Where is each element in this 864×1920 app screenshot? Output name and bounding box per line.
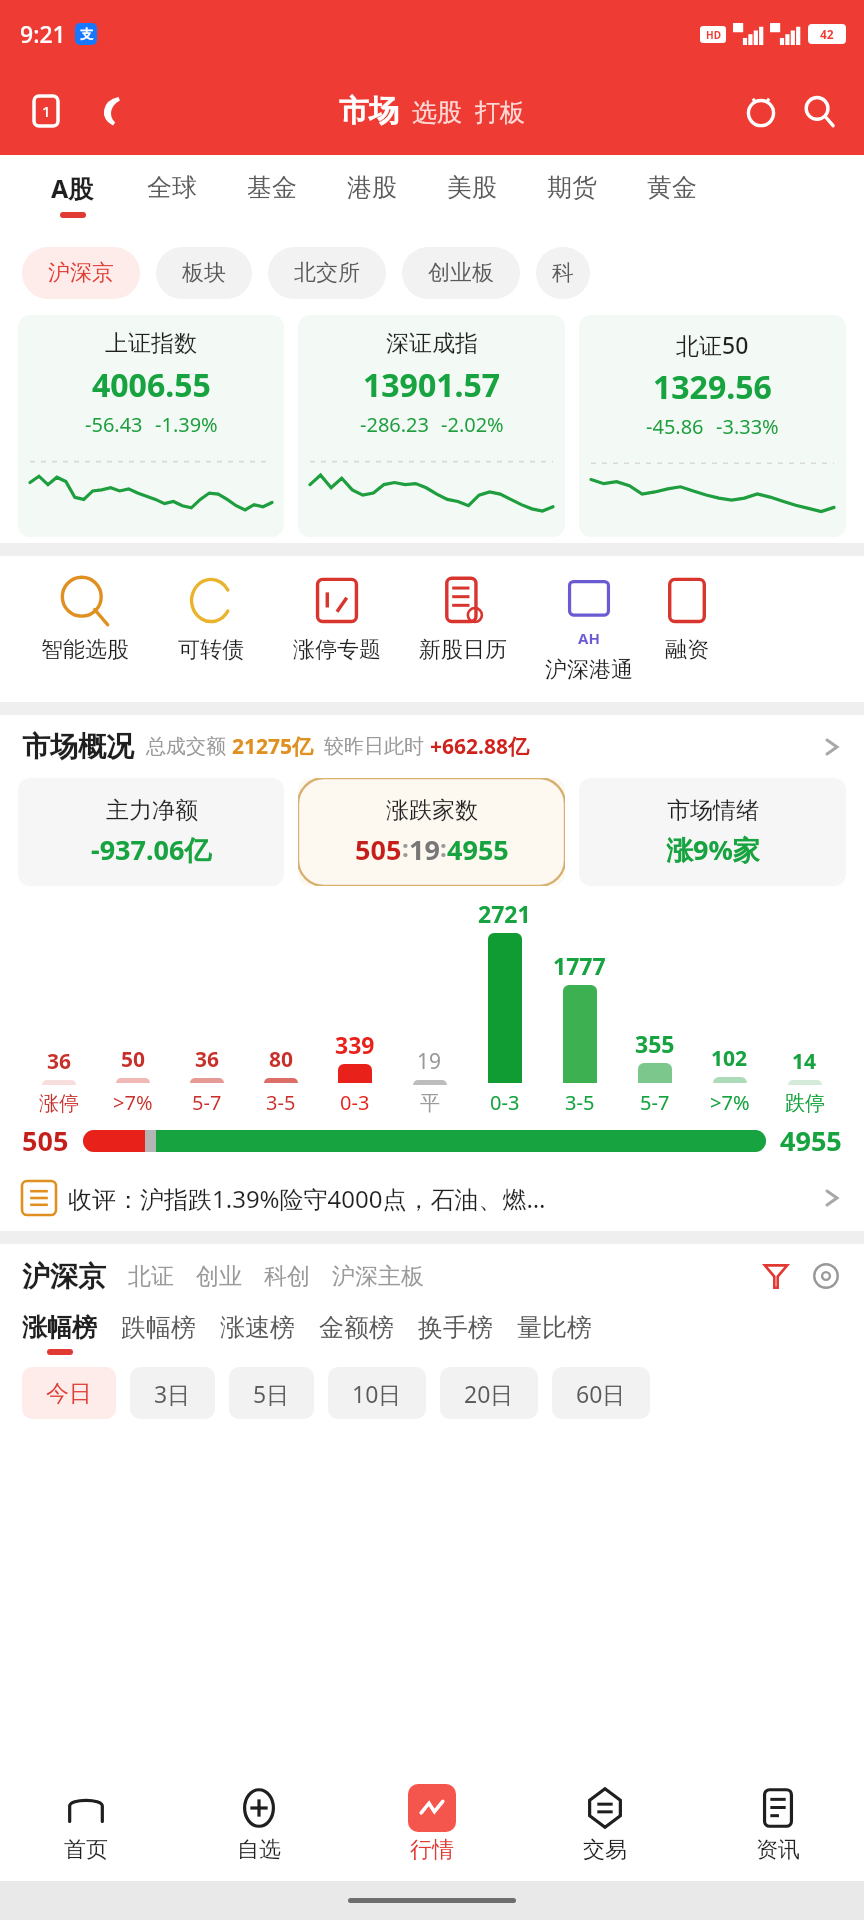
staticText: 5日 xyxy=(253,1378,290,1409)
button[interactable]: 涨停专题 xyxy=(274,574,400,664)
button[interactable]: 深证成指 xyxy=(298,315,565,537)
button[interactable]: 北证 xyxy=(128,1262,174,1291)
button[interactable]: 跌幅榜 xyxy=(121,1312,196,1355)
button[interactable]: 沪深主板 xyxy=(332,1262,424,1291)
button[interactable]: 科创 xyxy=(264,1262,310,1291)
staticText: 金额榜 xyxy=(319,1312,394,1343)
staticText: 上证指数 xyxy=(105,329,197,358)
button[interactable]: Alerts xyxy=(738,88,784,134)
staticText: -286.23 xyxy=(360,411,429,438)
button[interactable]: 融资 xyxy=(652,574,722,664)
button[interactable]: 主力净额 xyxy=(18,778,284,886)
button[interactable]: 量比榜 xyxy=(517,1312,592,1355)
staticText: 102 xyxy=(711,1044,748,1073)
staticText: 沪深京 xyxy=(48,259,114,287)
button[interactable]: 10日 xyxy=(328,1367,426,1419)
button[interactable]: 3日 xyxy=(130,1367,215,1419)
staticText: 14 xyxy=(792,1047,817,1076)
button[interactable]: 北证50 xyxy=(579,315,846,537)
button[interactable]: 收评：沪指跌1.39%险守4000点，石油、燃… xyxy=(0,1165,864,1231)
button[interactable]: 板块 xyxy=(156,247,252,299)
staticText: 13901.57 xyxy=(363,363,501,407)
staticText: 换手榜 xyxy=(418,1312,493,1343)
button[interactable]: 自选 xyxy=(172,1767,345,1881)
button[interactable]: 期货 xyxy=(522,155,622,233)
button[interactable]: 市场概况 xyxy=(0,729,864,764)
button[interactable]: 涨速榜 xyxy=(220,1312,295,1355)
staticText: 今日 xyxy=(46,1379,92,1408)
staticText: : xyxy=(440,831,447,864)
button[interactable]: AH xyxy=(526,574,652,684)
button[interactable]: 5日 xyxy=(229,1367,314,1419)
button[interactable]: 黄金 xyxy=(622,155,722,233)
button[interactable]: 美股 xyxy=(422,155,522,233)
staticText: 9:21 xyxy=(20,18,66,49)
button[interactable]: 选股 xyxy=(412,97,462,128)
staticText: 收评：沪指跌1.39%险守4000点，石油、燃… xyxy=(68,1182,546,1215)
staticText: 80 xyxy=(269,1045,294,1074)
button[interactable]: 港股 xyxy=(322,155,422,233)
button[interactable]: 市场情绪 xyxy=(579,778,846,886)
button[interactable]: 沪深京 xyxy=(22,1259,106,1294)
button[interactable]: 科 xyxy=(536,247,590,299)
staticText: 50 xyxy=(121,1045,146,1074)
button[interactable]: 首页 xyxy=(0,1767,172,1881)
staticText: 20日 xyxy=(464,1378,514,1409)
staticText: 21275亿 xyxy=(232,732,314,761)
button[interactable]: 全球 xyxy=(122,155,222,233)
button[interactable]: 市场 xyxy=(339,92,399,130)
button[interactable]: Filter xyxy=(756,1256,796,1296)
button[interactable]: 上证指数 xyxy=(18,315,284,537)
staticText: 60日 xyxy=(576,1378,626,1409)
staticText: 市场情绪 xyxy=(667,796,759,825)
staticText: : xyxy=(402,831,409,864)
staticText: 资讯 xyxy=(756,1836,800,1864)
button[interactable]: 新股日历 xyxy=(400,574,526,664)
staticText: 首页 xyxy=(64,1836,108,1864)
staticText: 沪深港通 xyxy=(545,656,633,684)
staticText: >7% xyxy=(710,1089,750,1116)
staticText: 跌幅榜 xyxy=(121,1312,196,1343)
button[interactable]: 创业板 xyxy=(402,247,520,299)
button[interactable]: 可转债 xyxy=(148,574,274,664)
button[interactable]: Night mode xyxy=(90,91,130,131)
staticText: 4006.55 xyxy=(92,363,211,407)
button[interactable]: 交易 xyxy=(518,1767,691,1881)
staticText: 505 xyxy=(355,831,402,868)
button[interactable]: Settings xyxy=(806,1256,846,1296)
staticText: 平 xyxy=(420,1091,440,1116)
button[interactable]: 60日 xyxy=(552,1367,650,1419)
staticText: 涨幅榜 xyxy=(22,1312,97,1343)
button[interactable]: 20日 xyxy=(440,1367,538,1419)
staticText: 355 xyxy=(635,1028,675,1059)
button[interactable]: 涨跌家数 xyxy=(298,778,565,886)
button[interactable]: 换手榜 xyxy=(418,1312,493,1355)
button[interactable]: 行情 xyxy=(345,1767,518,1881)
staticText: 支 xyxy=(80,26,93,42)
button[interactable]: A股 xyxy=(22,155,122,233)
button[interactable]: 金额榜 xyxy=(319,1312,394,1355)
staticText: 0-3 xyxy=(490,1089,520,1116)
staticText: 融资 xyxy=(665,636,709,664)
button[interactable]: 创业 xyxy=(196,1262,242,1291)
button[interactable]: 北交所 xyxy=(268,247,386,299)
staticText: 行情 xyxy=(410,1836,454,1864)
staticText: 主力净额 xyxy=(106,796,198,825)
button[interactable]: 打板 xyxy=(475,97,525,128)
button[interactable]: 今日 xyxy=(22,1367,116,1419)
staticText: 板块 xyxy=(182,259,226,287)
button[interactable]: 沪深京 xyxy=(22,247,140,299)
staticText: 期货 xyxy=(547,172,597,203)
staticText: 4955 xyxy=(780,1122,842,1159)
button[interactable]: Screenshot xyxy=(26,91,66,131)
button[interactable]: Search xyxy=(796,88,842,134)
button[interactable]: 智能选股 xyxy=(22,574,148,664)
staticText: -1.39% xyxy=(155,411,218,438)
button[interactable]: 资讯 xyxy=(691,1767,864,1881)
button[interactable]: 基金 xyxy=(222,155,322,233)
staticText: 可转债 xyxy=(178,636,244,664)
staticText: 505 xyxy=(22,1122,69,1159)
staticText: +662.88亿 xyxy=(430,732,529,761)
staticText: 新股日历 xyxy=(419,636,507,664)
button[interactable]: 涨幅榜 xyxy=(22,1312,97,1355)
